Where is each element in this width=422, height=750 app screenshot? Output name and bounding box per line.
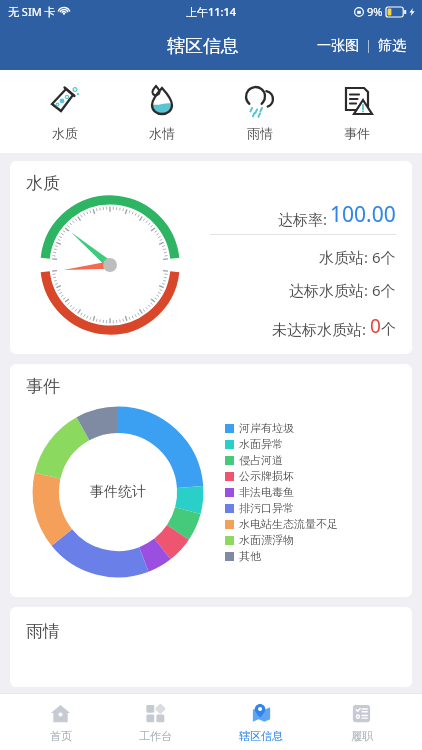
other: 首页: [49, 702, 72, 725]
staticText: 水质: [26, 173, 60, 194]
staticText: 公示牌损坏: [239, 469, 294, 483]
staticText: 履职: [351, 729, 373, 743]
button[interactable]: 筛选: [376, 31, 408, 61]
staticText: 事件: [344, 125, 370, 141]
staticText: 100.00: [330, 200, 396, 229]
staticText: 水质站: 6个: [319, 247, 396, 267]
other: 水质: [48, 84, 82, 118]
other: 事件: [340, 84, 374, 118]
staticText: 非法电毒鱼: [239, 485, 294, 499]
staticText: 未达标水质站:: [272, 319, 370, 339]
button[interactable]: 辖区信息: [221, 698, 301, 747]
staticText: 事件: [26, 376, 60, 397]
staticText: 辖区信息: [167, 35, 239, 58]
other: 工作台: [144, 702, 167, 725]
staticText: 筛选: [378, 37, 406, 55]
staticText: 达标水质站: 6个: [289, 280, 396, 300]
other: 辖区信息: [250, 702, 273, 725]
button[interactable]: 雨情: [227, 82, 293, 143]
button[interactable]: 一张图: [315, 31, 361, 61]
staticText: 水面异常: [239, 437, 283, 451]
staticText: 无 SIM 卡: [8, 4, 56, 19]
staticText: 个: [381, 320, 396, 339]
staticText: 首页: [50, 729, 72, 743]
staticText: 水电站生态流量不足: [239, 517, 338, 531]
staticText: 工作台: [139, 729, 172, 743]
staticText: 9%: [367, 4, 383, 19]
staticText: 一张图: [317, 37, 359, 55]
staticText: 河岸有垃圾: [239, 421, 294, 435]
staticText: 0: [370, 313, 381, 339]
other: 雨情: [243, 84, 277, 118]
other: 水情: [145, 84, 179, 118]
staticText: 上午11:14: [186, 4, 237, 19]
button[interactable]: 事件: [324, 82, 390, 143]
staticText: 排污口异常: [239, 501, 294, 515]
staticText: 其他: [239, 549, 261, 563]
other: 履职: [350, 702, 373, 725]
button[interactable]: 履职: [332, 698, 391, 747]
staticText: 达标率:: [278, 209, 328, 229]
staticText: 水质: [52, 125, 78, 141]
staticText: 辖区信息: [239, 729, 283, 743]
staticText: 事件统计: [90, 483, 146, 501]
staticText: 侵占河道: [239, 453, 283, 467]
button[interactable]: 工作台: [121, 698, 190, 747]
button[interactable]: 水质: [32, 82, 98, 143]
button[interactable]: 水情: [129, 82, 195, 143]
staticText: 水面漂浮物: [239, 533, 294, 547]
button[interactable]: 首页: [31, 698, 90, 747]
staticText: 水情: [149, 125, 175, 141]
staticText: 雨情: [26, 621, 60, 642]
staticText: 雨情: [247, 125, 273, 141]
